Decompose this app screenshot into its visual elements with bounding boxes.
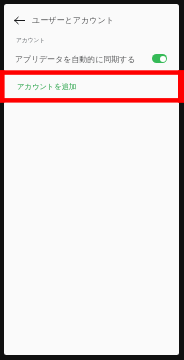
staticText: アカウント bbox=[16, 37, 46, 44]
staticText: アカウントを追加 bbox=[17, 82, 77, 91]
button[interactable]: Back bbox=[9, 11, 30, 30]
button[interactable] bbox=[0, 50, 184, 68]
staticText: アプリデータを自動的に同期する bbox=[15, 54, 136, 64]
staticText: ユーザーとアカウント bbox=[32, 15, 114, 25]
button[interactable]: アカウントを追加 bbox=[0, 73, 184, 99]
button[interactable]: Auto-sync toggle bbox=[152, 54, 167, 63]
